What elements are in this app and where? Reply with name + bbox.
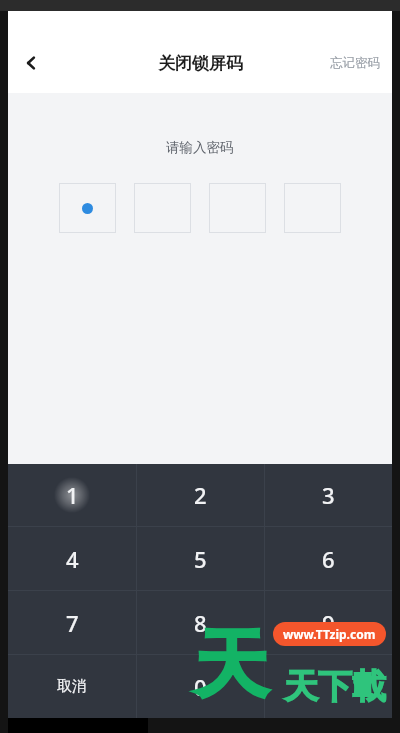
- button[interactable]: 取消: [8, 655, 136, 718]
- staticText: 取消: [57, 677, 87, 696]
- staticText: 7: [66, 608, 79, 638]
- staticText: 关闭锁屏码: [158, 53, 243, 74]
- button[interactable]: 5: [137, 527, 264, 590]
- staticText: 请输入密码: [166, 139, 234, 156]
- staticText: 8: [194, 608, 207, 638]
- button[interactable]: 9: [265, 591, 392, 654]
- button[interactable]: Delete: [265, 655, 392, 718]
- staticText: 天下載: [284, 665, 386, 708]
- button[interactable]: Digit 4: [284, 183, 341, 233]
- staticText: 0: [194, 672, 207, 702]
- staticText: 6: [322, 544, 335, 574]
- button[interactable]: 1: [8, 464, 136, 526]
- button[interactable]: 4: [8, 527, 136, 590]
- staticText: 3: [322, 480, 335, 510]
- button[interactable]: Digit 2: [134, 183, 191, 233]
- staticText: 2: [194, 480, 207, 510]
- button[interactable]: Digit 3: [209, 183, 266, 233]
- staticText: www.TTzip.com: [283, 626, 376, 642]
- staticText: 9: [322, 608, 335, 638]
- button[interactable]: 忘记密码: [318, 45, 392, 81]
- button[interactable]: Back: [8, 40, 54, 86]
- button[interactable]: 0: [137, 655, 264, 718]
- staticText: 忘记密码: [330, 55, 380, 71]
- staticText: 天: [194, 619, 268, 712]
- staticText: 4: [66, 544, 79, 574]
- button[interactable]: Digit 1: [59, 183, 116, 233]
- button[interactable]: 2: [137, 464, 264, 526]
- staticText: 5: [194, 544, 207, 574]
- staticText: 1: [66, 480, 79, 510]
- button[interactable]: 6: [265, 527, 392, 590]
- button[interactable]: 3: [265, 464, 392, 526]
- button[interactable]: 7: [8, 591, 136, 654]
- button[interactable]: 8: [137, 591, 264, 654]
